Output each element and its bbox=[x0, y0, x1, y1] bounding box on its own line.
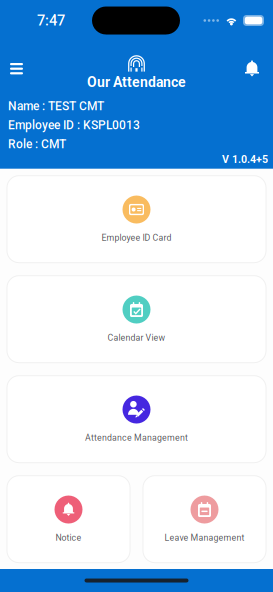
button[interactable]: Calendar View bbox=[7, 276, 266, 363]
staticText: Name : TEST CMT bbox=[8, 99, 104, 113]
button[interactable]: Notice bbox=[7, 476, 130, 563]
staticText: Our Attendance bbox=[87, 74, 186, 90]
button[interactable]: Attendance Management bbox=[7, 376, 266, 463]
staticText: Employee ID Card bbox=[101, 232, 171, 243]
button[interactable]: Menu bbox=[0, 53, 33, 84]
staticText: 7:47 bbox=[37, 12, 65, 29]
button[interactable]: Leave Management bbox=[143, 476, 266, 563]
staticText: Attendance Management bbox=[85, 432, 188, 443]
staticText: Role : CMT bbox=[8, 137, 66, 151]
button[interactable]: Notifications bbox=[231, 53, 273, 84]
staticText: Leave Management bbox=[164, 532, 244, 543]
button[interactable]: Employee ID Card bbox=[7, 176, 266, 263]
staticText: V 1.0.4+5 bbox=[222, 153, 268, 166]
staticText: Employee ID : KSPL0013 bbox=[8, 118, 140, 132]
staticText: Notice bbox=[55, 532, 81, 543]
staticText: Calendar View bbox=[107, 332, 165, 343]
